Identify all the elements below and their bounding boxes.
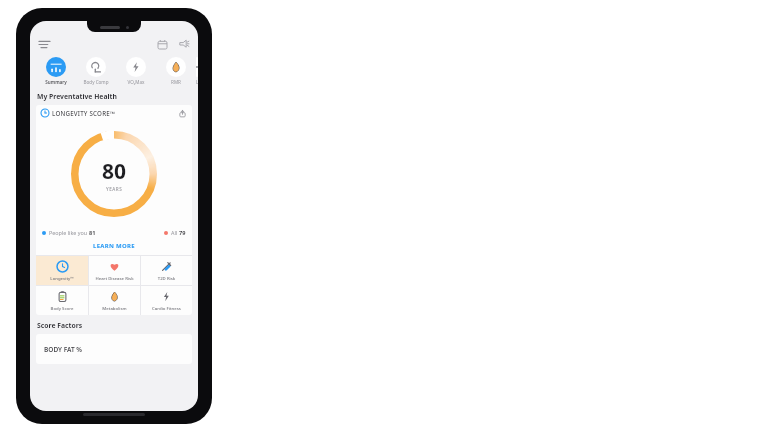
button[interactable]: LEARN MORE: [36, 240, 192, 252]
staticText: VO₂Max: [116, 79, 156, 85]
button[interactable]: BODY FAT %: [36, 334, 192, 364]
button[interactable]: VO₂Max: [116, 57, 156, 85]
staticText: T2D Risk: [141, 275, 192, 281]
staticText: Cardio Fitness: [141, 305, 192, 311]
staticText: Metabolism: [89, 305, 140, 311]
staticText: 79: [179, 229, 186, 237]
staticText: 80: [102, 157, 127, 186]
staticText: Labs: [196, 79, 198, 87]
staticText: BODY FAT %: [44, 345, 83, 354]
staticText: Score Factors: [37, 321, 83, 330]
staticText: LONGEVITY SCORE™: [52, 109, 115, 117]
staticText: Summary: [36, 79, 76, 85]
button[interactable]: Longevity™: [36, 256, 88, 285]
button[interactable]: Summary: [36, 57, 76, 85]
button[interactable]: Body Score: [36, 286, 88, 315]
staticText: My Preventative Health: [37, 92, 117, 101]
button[interactable]: RMR: [156, 57, 196, 85]
button[interactable]: Menu: [37, 37, 51, 51]
staticText: All: [171, 229, 179, 236]
button[interactable]: T2D Risk: [141, 256, 192, 285]
button[interactable]: Body Comp: [76, 57, 116, 85]
button[interactable]: Metabolism: [89, 286, 140, 315]
staticText: People like you: [49, 229, 89, 236]
staticText: Longevity™: [36, 275, 88, 281]
button[interactable]: Share: [177, 108, 187, 118]
button[interactable]: Announcements: [177, 37, 191, 51]
button[interactable]: Calendar: [155, 37, 169, 51]
button[interactable]: Labs: [196, 57, 198, 87]
button[interactable]: Cardio Fitness: [141, 286, 192, 315]
button[interactable]: Heart Disease Risk: [89, 256, 140, 285]
staticText: 81: [89, 229, 96, 237]
staticText: LEARN MORE: [93, 242, 135, 250]
staticText: Body Comp: [76, 79, 116, 85]
staticText: YEARS: [106, 186, 123, 192]
staticText: Body Score: [36, 305, 88, 311]
staticText: Heart Disease Risk: [89, 275, 140, 281]
staticText: RMR: [156, 79, 196, 85]
